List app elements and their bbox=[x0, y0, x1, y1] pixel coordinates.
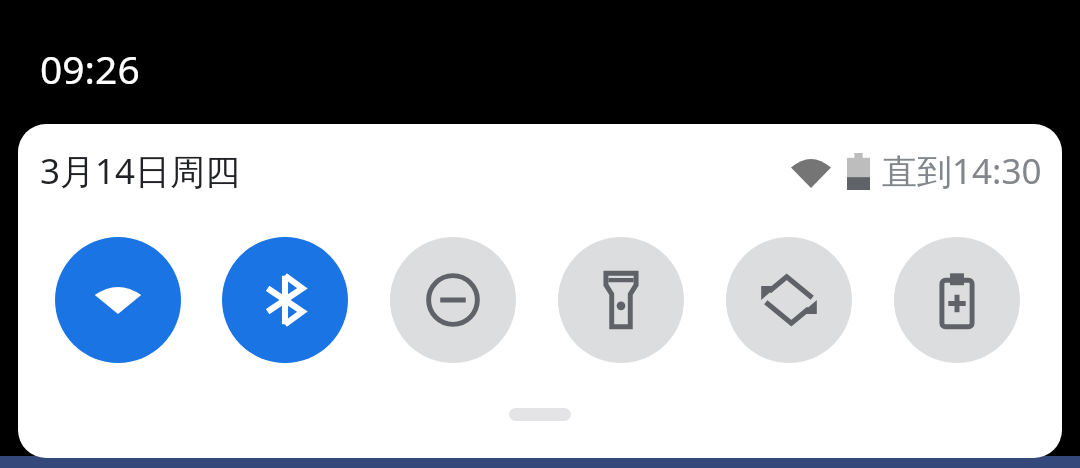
button[interactable]: Battery saver bbox=[894, 237, 1020, 363]
other: Battery bbox=[847, 153, 870, 190]
button[interactable]: Auto-rotate bbox=[726, 237, 852, 363]
button[interactable]: Wi-Fi bbox=[55, 237, 181, 363]
staticText: 09:26 bbox=[40, 42, 140, 95]
button[interactable]: Bluetooth bbox=[222, 237, 348, 363]
button[interactable] bbox=[509, 408, 571, 421]
button[interactable]: 3月14日周四 bbox=[40, 147, 241, 195]
button[interactable]: Do not disturb bbox=[390, 237, 516, 363]
staticText: 直到14:30 bbox=[882, 147, 1042, 195]
button[interactable]: Flashlight bbox=[558, 237, 684, 363]
other: Wi-Fi signal bbox=[791, 154, 831, 188]
